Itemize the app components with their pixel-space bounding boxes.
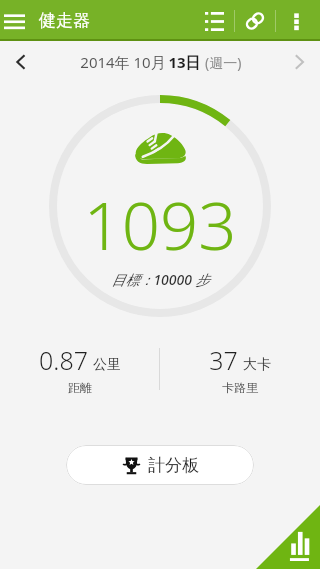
- staticText: 卡路里: [222, 380, 258, 395]
- staticText: (週一): [201, 53, 242, 72]
- button[interactable]: Menu: [0, 2, 33, 40]
- button[interactable]: Link: [235, 1, 275, 41]
- staticText: 0.87: [39, 343, 88, 377]
- button[interactable]: 37: [160, 343, 320, 395]
- button[interactable]: 計分板: [66, 445, 254, 485]
- staticText: 計分板: [148, 455, 199, 476]
- staticText: 13日: [168, 52, 201, 72]
- staticText: 1093: [83, 178, 237, 269]
- staticText: 公里: [93, 356, 121, 374]
- button[interactable]: Previous day: [0, 41, 42, 83]
- button[interactable]: Next day: [278, 41, 320, 83]
- staticText: 健走器: [39, 10, 90, 31]
- button[interactable]: Statistics: [256, 505, 320, 569]
- staticText: 2014年 10月: [78, 52, 168, 72]
- button[interactable]: List: [194, 1, 234, 41]
- staticText: 距離: [68, 380, 92, 395]
- staticText: 目標：10000 步: [111, 270, 210, 289]
- staticText: 37: [209, 343, 238, 377]
- button[interactable]: More options: [276, 1, 316, 41]
- button[interactable]: 0.87: [0, 343, 159, 395]
- staticText: 大卡: [243, 356, 271, 374]
